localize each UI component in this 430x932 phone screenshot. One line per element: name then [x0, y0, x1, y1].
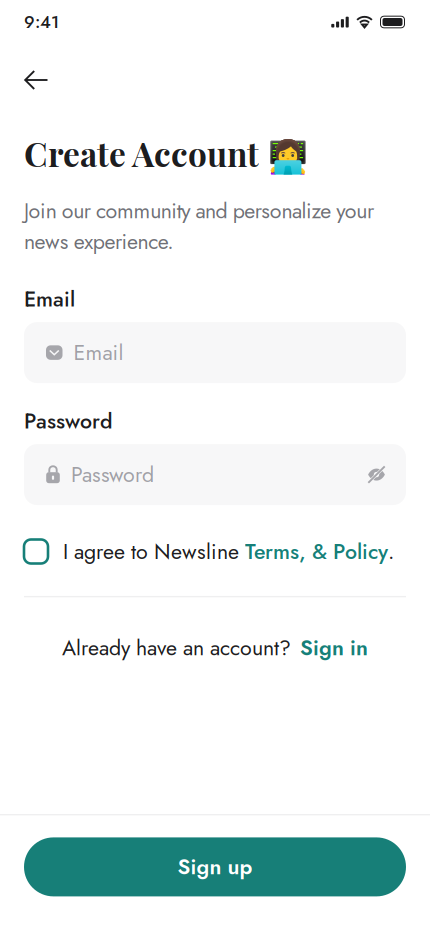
staticText: I agree to Newsline: [63, 536, 245, 567]
button[interactable]: Sign up: [24, 837, 406, 896]
staticText: Create Account: [24, 131, 259, 175]
staticText: 👩‍💻: [268, 139, 308, 175]
staticText: Sign in: [300, 632, 368, 663]
staticText: Already have an account?: [62, 632, 291, 663]
staticText: Email: [24, 284, 75, 314]
button[interactable]: Back: [24, 60, 70, 100]
staticText: Password: [71, 459, 154, 490]
staticText: Email: [73, 337, 123, 368]
button[interactable]: Sign in: [300, 632, 368, 663]
button[interactable]: Password: [24, 444, 406, 505]
button[interactable]: Show password: [367, 465, 386, 484]
staticText: Sign up: [177, 851, 252, 882]
button[interactable]: Email: [24, 322, 406, 383]
staticText: Terms, & Policy: [245, 536, 388, 567]
staticText: .: [388, 536, 394, 567]
staticText: 9:41: [24, 9, 59, 34]
staticText: Password: [24, 406, 113, 436]
button[interactable]: I agree to Newsline: [24, 536, 406, 567]
staticText: Join our community and personalize your …: [24, 195, 374, 257]
